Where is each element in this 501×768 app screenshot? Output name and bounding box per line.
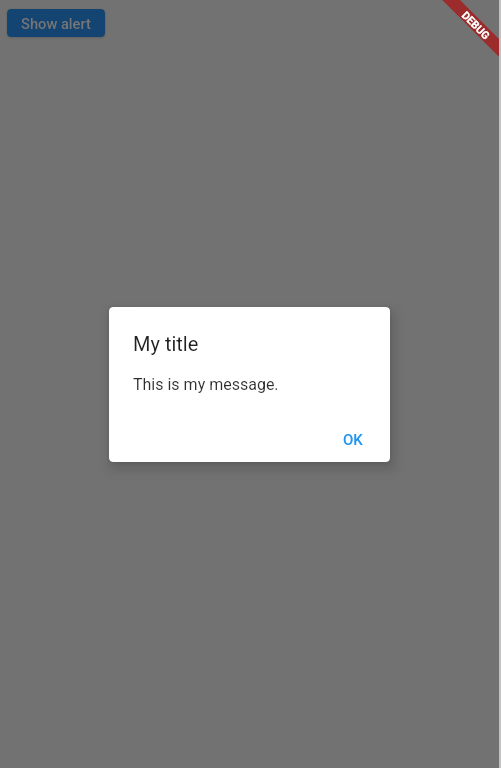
staticText: Show alert <box>21 15 91 32</box>
button[interactable]: OK <box>335 425 371 455</box>
other: Debug build banner <box>411 0 501 90</box>
staticText: DEBUG <box>458 8 492 42</box>
staticText: My title <box>133 332 199 355</box>
button[interactable]: Show alert <box>7 9 105 37</box>
staticText: OK <box>343 431 363 449</box>
staticText: This is my message. <box>133 375 279 394</box>
